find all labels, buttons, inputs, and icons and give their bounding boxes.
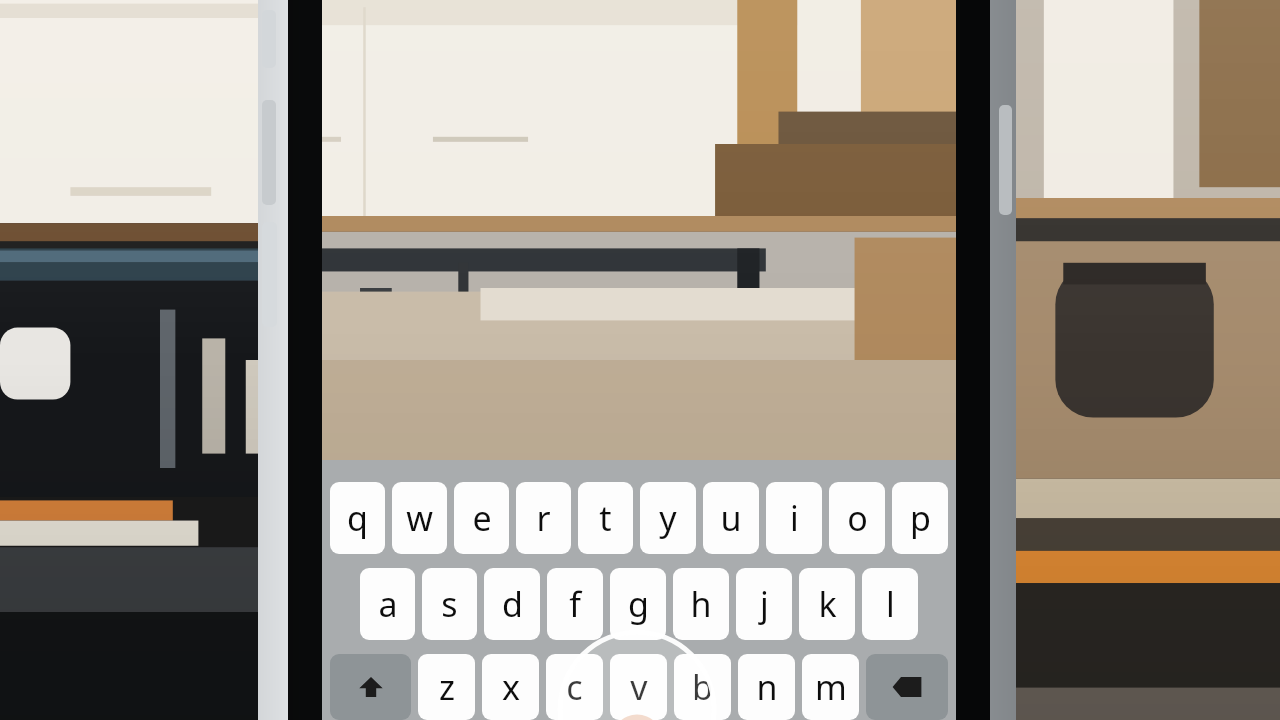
staticText: o: [847, 495, 868, 541]
button[interactable]: f: [547, 568, 603, 640]
button[interactable]: r: [516, 482, 571, 554]
staticText: c: [566, 664, 583, 710]
staticText: q: [347, 495, 368, 541]
button[interactable]: b: [674, 654, 731, 720]
button[interactable]: w: [392, 482, 447, 554]
button[interactable]: n: [738, 654, 795, 720]
button[interactable]: z: [418, 654, 475, 720]
button[interactable]: v: [610, 654, 667, 720]
button[interactable]: c: [546, 654, 603, 720]
staticText: t: [599, 495, 612, 541]
staticText: d: [502, 581, 523, 627]
button[interactable]: o: [829, 482, 885, 554]
button[interactable]: g: [610, 568, 666, 640]
staticText: g: [628, 581, 649, 627]
button[interactable]: Backspace: [866, 654, 948, 720]
staticText: n: [756, 664, 778, 710]
button[interactable]: x: [482, 654, 539, 720]
staticText: m: [815, 664, 847, 710]
staticText: y: [659, 495, 677, 541]
button[interactable]: a: [360, 568, 415, 640]
button[interactable]: e: [454, 482, 509, 554]
button[interactable]: Shift: [330, 654, 411, 720]
staticText: j: [760, 581, 769, 627]
button[interactable]: i: [766, 482, 822, 554]
button[interactable]: t: [578, 482, 633, 554]
staticText: l: [886, 581, 895, 627]
staticText: f: [569, 581, 581, 627]
button[interactable]: l: [862, 568, 918, 640]
staticText: v: [630, 664, 648, 710]
button[interactable]: j: [736, 568, 792, 640]
button[interactable]: k: [799, 568, 855, 640]
staticText: u: [720, 495, 742, 541]
button[interactable]: h: [673, 568, 729, 640]
staticText: x: [502, 664, 520, 710]
button[interactable]: y: [640, 482, 696, 554]
staticText: r: [536, 495, 551, 541]
button[interactable]: q: [330, 482, 385, 554]
button[interactable]: p: [892, 482, 948, 554]
staticText: w: [406, 495, 433, 541]
staticText: k: [818, 581, 837, 627]
button[interactable]: u: [703, 482, 759, 554]
button[interactable]: m: [802, 654, 859, 720]
staticText: s: [441, 581, 458, 627]
button[interactable]: d: [484, 568, 540, 640]
staticText: b: [692, 664, 713, 710]
staticText: p: [910, 495, 931, 541]
staticText: a: [378, 581, 398, 627]
staticText: i: [790, 495, 799, 541]
button[interactable]: s: [422, 568, 477, 640]
staticText: z: [439, 664, 455, 710]
staticText: e: [472, 495, 492, 541]
staticText: h: [690, 581, 712, 627]
